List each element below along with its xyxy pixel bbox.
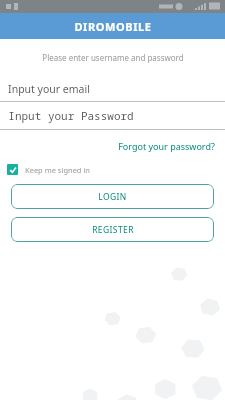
staticText: LOGIN <box>98 191 127 203</box>
staticText: Forgot your password? <box>118 140 215 152</box>
staticText: Input your Password <box>8 108 134 123</box>
staticText: Input your email <box>8 82 90 96</box>
staticText: DIROMOBILE <box>74 19 152 34</box>
button[interactable]: LOGIN <box>11 184 214 209</box>
button[interactable]: Input your Password <box>0 102 225 129</box>
staticText: Keep me signed in <box>25 165 90 175</box>
staticText: REGISTER <box>92 224 134 236</box>
button[interactable]: Forgot your password? <box>108 138 225 154</box>
button[interactable]: Input your email <box>0 76 225 101</box>
button[interactable]: Keep me signed in <box>0 162 98 177</box>
button[interactable]: REGISTER <box>11 217 214 242</box>
staticText: Please enter username and password <box>42 52 184 63</box>
